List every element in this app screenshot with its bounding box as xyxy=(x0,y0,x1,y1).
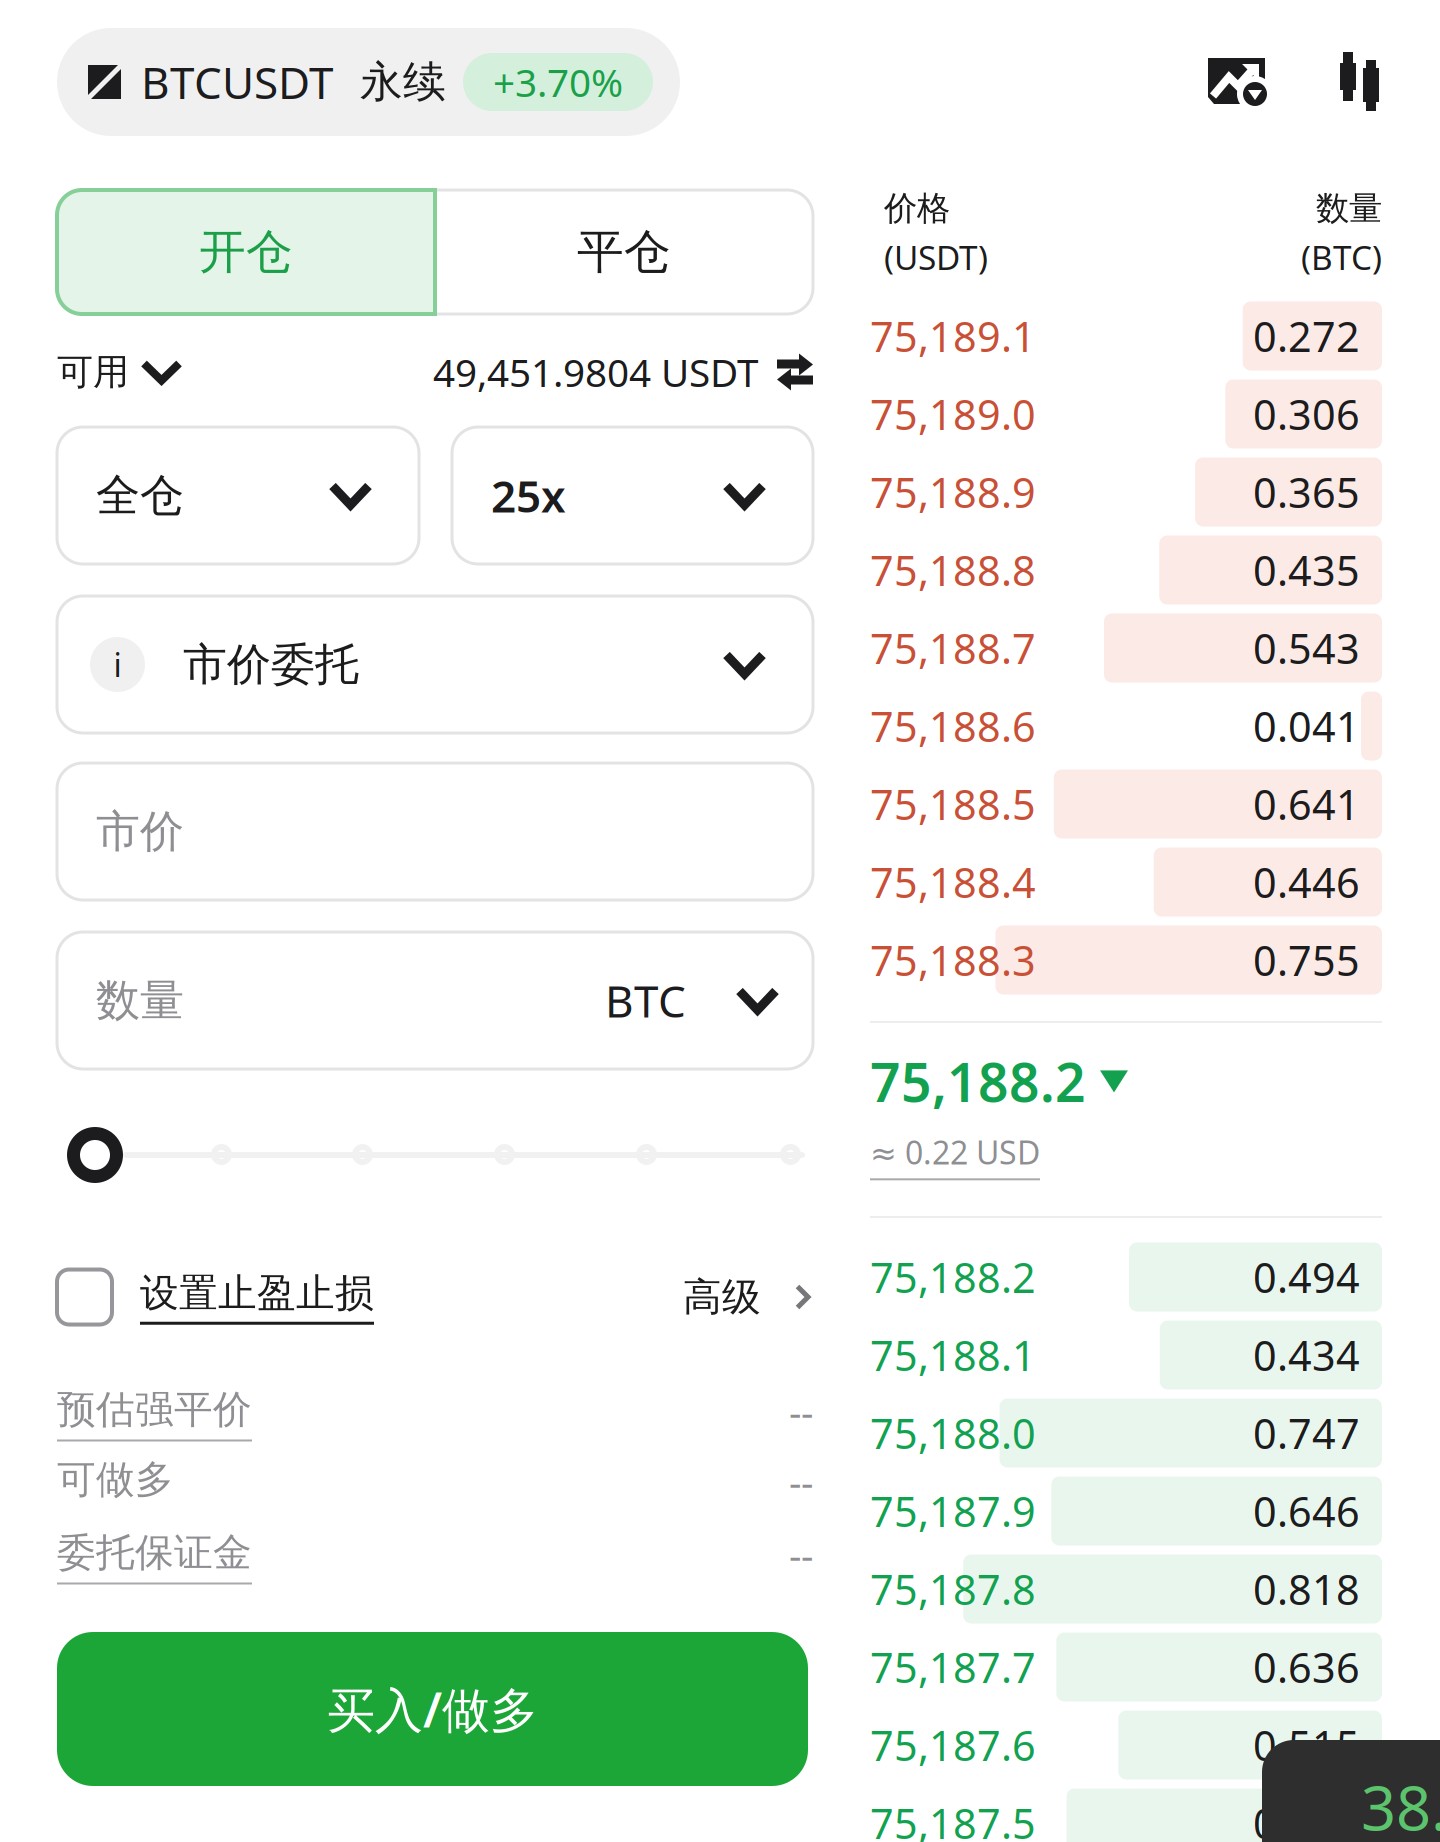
staticText: 75,189.0 xyxy=(870,387,1036,441)
button[interactable]: 75,188.8 xyxy=(870,531,1382,609)
staticText: 数量 xyxy=(96,973,184,1027)
button[interactable]: 可用 xyxy=(57,350,183,394)
staticText: 0.818 xyxy=(1253,1562,1360,1616)
staticText: 75,189.1 xyxy=(870,309,1036,363)
button[interactable]: 75,188.1 xyxy=(870,1316,1382,1394)
button[interactable]: 75,188.2 xyxy=(870,1238,1382,1316)
staticText: 0.494 xyxy=(1253,1250,1360,1304)
staticText: 0.272 xyxy=(1253,309,1360,363)
button[interactable]: 75,188.9 xyxy=(870,453,1382,531)
button[interactable]: 75,188.7 xyxy=(870,609,1382,687)
staticText: 市价 xyxy=(96,804,184,858)
staticText: 0.755 xyxy=(1253,933,1360,987)
staticText: -- xyxy=(789,1386,813,1437)
staticText: 0.747 xyxy=(1253,1406,1360,1460)
staticText: (BTC) xyxy=(1301,235,1382,279)
button[interactable]: 市价 xyxy=(57,763,813,900)
staticText: 75,187.5 xyxy=(870,1796,1036,1842)
staticText: 75,188.9 xyxy=(870,465,1036,519)
staticText: 高级 xyxy=(683,1273,761,1321)
staticText: (USDT) xyxy=(884,235,988,279)
button[interactable]: BTCUSDT xyxy=(57,28,680,136)
staticText: 全仓 xyxy=(96,468,184,522)
button[interactable]: 高级 xyxy=(683,1273,813,1321)
button[interactable]: 75,187.6 xyxy=(870,1706,1382,1784)
button[interactable]: 75,189.0 xyxy=(870,375,1382,453)
staticText: +3.70% xyxy=(493,56,623,108)
staticText: 0.616 xyxy=(1253,1796,1360,1842)
staticText: 75,188.3 xyxy=(870,933,1036,987)
staticText: 0.365 xyxy=(1253,465,1360,519)
staticText: 可做多 xyxy=(57,1456,174,1503)
button[interactable]: 开仓 xyxy=(57,190,435,314)
staticText: 0.543 xyxy=(1253,621,1360,675)
staticText: 75,187.8 xyxy=(870,1562,1036,1616)
button[interactable]: 预估强平价 xyxy=(57,1386,813,1438)
staticText: 75,188.5 xyxy=(870,777,1036,831)
staticText: BTCUSDT xyxy=(141,53,333,111)
staticText: i xyxy=(113,643,121,686)
button[interactable]: 买入/做多 xyxy=(57,1632,808,1786)
button[interactable]: 75,188.5 xyxy=(870,765,1382,843)
button[interactable]: i xyxy=(57,596,813,733)
staticText: 75,187.7 xyxy=(870,1640,1036,1694)
staticText: 75,187.6 xyxy=(870,1718,1036,1772)
button[interactable]: Amount slider xyxy=(67,1127,123,1183)
staticText: ≈ 0.22 USD xyxy=(870,1131,1040,1173)
button[interactable]: 75,188.0 xyxy=(870,1394,1382,1472)
staticText: 0.515 xyxy=(1253,1718,1360,1772)
button[interactable]: Candlestick chart xyxy=(1340,52,1379,111)
button[interactable]: 75,188.3 xyxy=(870,921,1382,999)
staticText: 0.306 xyxy=(1253,387,1360,441)
button[interactable]: 49,451.9804 USDT xyxy=(433,346,813,398)
button[interactable]: Line chart xyxy=(1208,58,1270,110)
staticText: 预估强平价 xyxy=(57,1386,252,1433)
staticText: -- xyxy=(789,1529,813,1580)
staticText: BTC xyxy=(605,971,686,1030)
staticText: 0.435 xyxy=(1253,543,1360,597)
staticText: 开仓 xyxy=(199,223,293,281)
staticText: 0.041 xyxy=(1253,699,1360,753)
staticText: 买入/做多 xyxy=(327,1677,538,1741)
staticText: 38.1 xyxy=(1361,1766,1440,1842)
button[interactable]: 设置止盈止损 xyxy=(57,1269,374,1325)
button[interactable]: 数量 xyxy=(57,932,813,1069)
staticText: 49,451.9804 USDT xyxy=(433,346,758,398)
button[interactable]: 75,187.8 xyxy=(870,1550,1382,1628)
button[interactable]: 25x xyxy=(452,427,813,564)
staticText: 价格 xyxy=(884,188,950,229)
button[interactable]: 75,187.7 xyxy=(870,1628,1382,1706)
button[interactable]: 委托保证金 xyxy=(57,1529,813,1581)
staticText: 设置止盈止损 xyxy=(140,1269,374,1317)
staticText: 75,188.0 xyxy=(870,1406,1036,1460)
staticText: 0.434 xyxy=(1253,1328,1360,1382)
staticText: 0.446 xyxy=(1253,855,1360,909)
button[interactable]: 平仓 xyxy=(435,190,813,314)
staticText: 75,188.1 xyxy=(870,1328,1036,1382)
staticText: 数量 xyxy=(1316,188,1382,229)
staticText: 0.646 xyxy=(1253,1484,1360,1538)
staticText: 可用 xyxy=(57,350,129,394)
staticText: 委托保证金 xyxy=(57,1529,252,1576)
staticText: 市价委托 xyxy=(183,637,359,691)
button[interactable]: 可做多 xyxy=(57,1456,813,1508)
button[interactable]: 75,188.6 xyxy=(870,687,1382,765)
button[interactable]: 75,187.5 xyxy=(870,1784,1382,1842)
staticText: 永续 xyxy=(360,56,446,108)
staticText: 75,188.7 xyxy=(870,621,1036,675)
staticText: 平仓 xyxy=(577,223,671,281)
staticText: -- xyxy=(789,1456,813,1507)
staticText: 75,188.2 xyxy=(870,1046,1086,1117)
staticText: 75,187.9 xyxy=(870,1484,1036,1538)
button[interactable]: 75,188.4 xyxy=(870,843,1382,921)
staticText: 75,188.2 xyxy=(870,1250,1036,1304)
staticText: 75,188.6 xyxy=(870,699,1036,753)
staticText: 0.636 xyxy=(1253,1640,1360,1694)
staticText: 0.641 xyxy=(1253,777,1360,831)
button[interactable]: 75,187.9 xyxy=(870,1472,1382,1550)
button[interactable]: 75,189.1 xyxy=(870,297,1382,375)
button[interactable]: 75,188.2 xyxy=(870,1046,1382,1206)
button[interactable]: 全仓 xyxy=(57,427,419,564)
staticText: 75,188.4 xyxy=(870,855,1036,909)
staticText: 25x xyxy=(491,466,566,525)
